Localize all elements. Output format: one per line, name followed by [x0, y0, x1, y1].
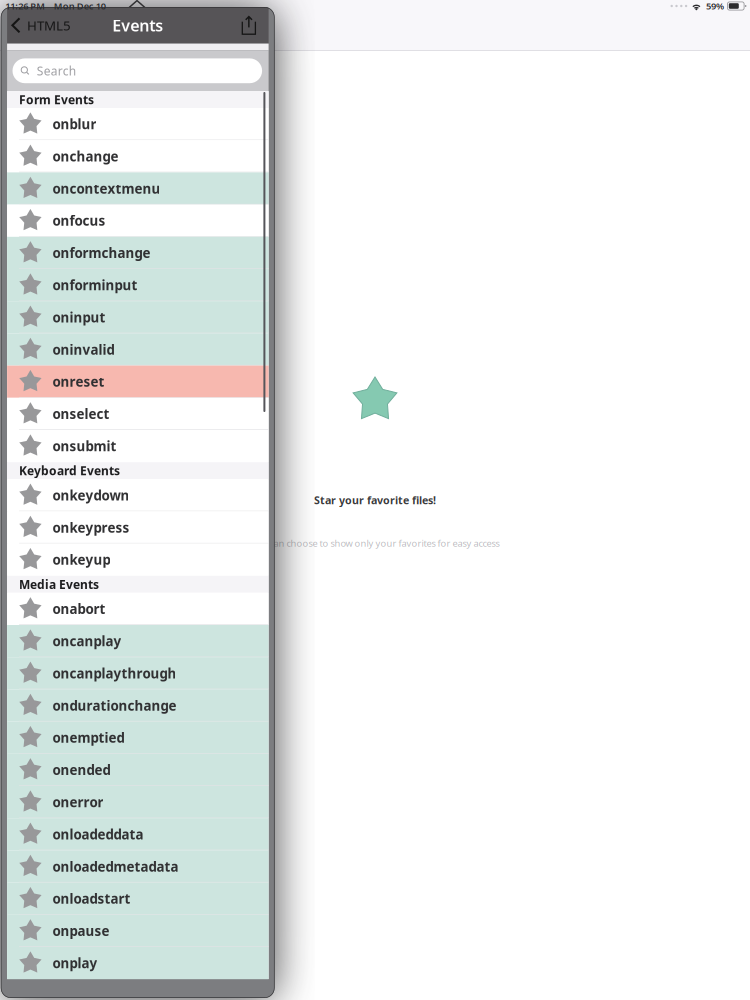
staticText: onselect: [52, 405, 109, 423]
button[interactable]: Share: [232, 7, 269, 44]
button[interactable]: onkeydown: [7, 479, 269, 511]
staticText: onfocus: [52, 212, 105, 229]
staticText: onforminput: [52, 276, 137, 294]
staticText: oncontextmenu: [52, 180, 160, 197]
button[interactable]: onabort: [7, 593, 269, 625]
button[interactable]: oncanplaythrough: [7, 657, 269, 689]
button[interactable]: onselect: [7, 398, 269, 430]
button[interactable]: onloadedmetadata: [7, 850, 269, 883]
button[interactable]: ondurationchange: [7, 689, 269, 722]
staticText: oninput: [52, 308, 105, 326]
staticText: Star your favorite files!: [314, 493, 436, 507]
staticText: Mon Dec 10: [54, 0, 106, 12]
button[interactable]: onkeyup: [7, 544, 269, 576]
staticText: Form Events: [19, 91, 94, 107]
staticText: onformchange: [52, 244, 150, 262]
button[interactable]: oninvalid: [7, 333, 269, 366]
staticText: oncanplay: [52, 632, 121, 650]
button[interactable]: onloadeddata: [7, 818, 269, 850]
button[interactable]: onforminput: [7, 269, 269, 301]
button[interactable]: onchange: [7, 140, 269, 172]
staticText: onemptied: [52, 729, 124, 746]
button[interactable]: onplay: [7, 947, 269, 979]
button[interactable]: onblur: [7, 108, 269, 140]
staticText: Events: [112, 15, 163, 36]
staticText: 11:26 PM: [5, 0, 45, 12]
staticText: onplay: [52, 954, 97, 972]
staticText: onkeypress: [52, 519, 129, 536]
button[interactable]: onfocus: [7, 205, 269, 237]
staticText: onsubmit: [52, 437, 116, 455]
staticText: Media Events: [19, 576, 99, 592]
button[interactable]: oncontextmenu: [7, 172, 269, 205]
button[interactable]: HTML5: [7, 7, 79, 44]
staticText: onloadstart: [52, 890, 130, 907]
button[interactable]: onkeypress: [7, 511, 269, 544]
button[interactable]: onerror: [7, 786, 269, 818]
button[interactable]: onloadstart: [7, 883, 269, 915]
staticText: onended: [52, 761, 110, 779]
staticText: You can choose to show only your favorit…: [250, 537, 499, 549]
staticText: oncanplaythrough: [52, 664, 176, 682]
staticText: onloadedmetadata: [52, 858, 178, 875]
button[interactable]: onsubmit: [7, 430, 269, 462]
staticText: 59%: [706, 0, 724, 12]
staticText: oninvalid: [52, 341, 114, 358]
staticText: onkeydown: [52, 486, 129, 504]
button[interactable]: onpause: [7, 915, 269, 947]
staticText: HTML5: [27, 16, 71, 34]
staticText: onabort: [52, 600, 105, 618]
staticText: onkeyup: [52, 551, 110, 568]
button[interactable]: onformchange: [7, 237, 269, 269]
staticText: onerror: [52, 793, 103, 811]
button[interactable]: onended: [7, 754, 269, 786]
staticText: onpause: [52, 922, 109, 940]
staticText: onreset: [52, 373, 104, 390]
staticText: onchange: [52, 147, 118, 165]
button[interactable]: onemptied: [7, 722, 269, 754]
button[interactable]: onreset: [7, 366, 269, 398]
staticText: onloadeddata: [52, 825, 143, 843]
button[interactable]: oncanplay: [7, 625, 269, 657]
staticText: Search: [37, 63, 76, 79]
button[interactable]: oninput: [7, 301, 269, 333]
staticText: ondurationchange: [52, 697, 176, 714]
staticText: Keyboard Events: [19, 463, 120, 479]
staticText: onblur: [52, 115, 96, 133]
